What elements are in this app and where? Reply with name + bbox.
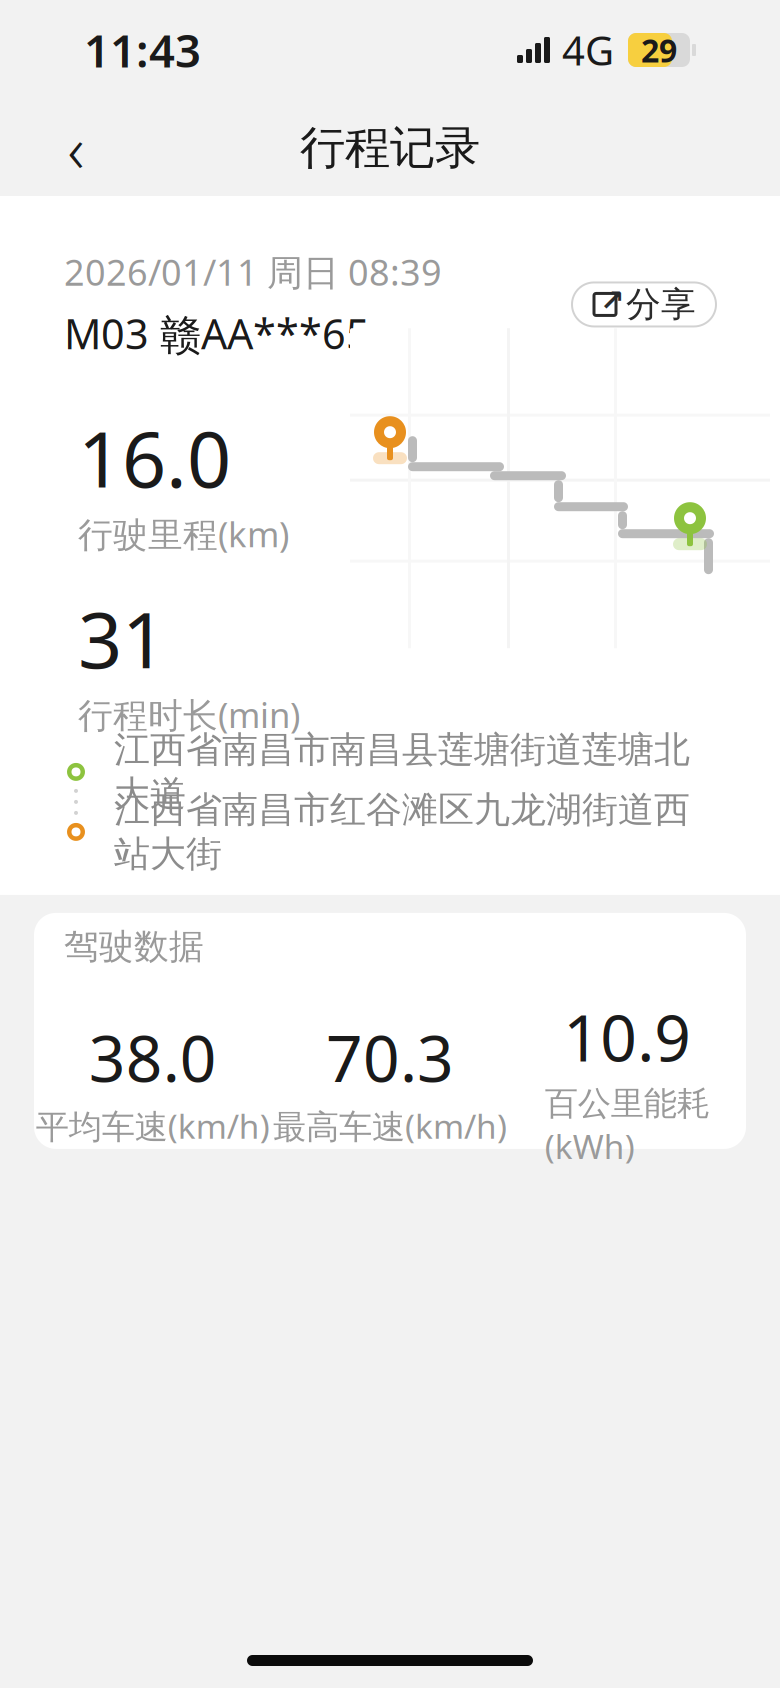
staticText: ↗ — [600, 284, 625, 317]
staticText: 29 — [641, 29, 677, 71]
staticText: 行程时长(min) — [78, 692, 300, 738]
staticText: 平均车速(km/h) — [36, 1104, 270, 1148]
staticText: 2026/01/11 周日 08:39 — [64, 248, 442, 296]
staticText: 38.0 — [89, 1015, 217, 1100]
staticText: 最高车速(km/h) — [273, 1104, 507, 1148]
staticText: 分享 — [626, 283, 696, 326]
staticText: 行驶里程(km) — [78, 511, 289, 557]
staticText: 行程记录 — [300, 120, 480, 176]
staticText: 江西省南昌市南昌县莲塘街道莲塘北大道 — [114, 728, 690, 816]
staticText: 驾驶数据 — [64, 925, 204, 968]
staticText: 70.3 — [326, 1015, 454, 1100]
staticText: ‹ — [67, 105, 84, 190]
staticText: 10.9 — [563, 994, 691, 1079]
staticText: 百公里能耗(kWh) — [545, 1083, 710, 1168]
staticText: 4G — [562, 23, 614, 76]
staticText: 11:43 — [84, 20, 201, 80]
staticText: 江西省南昌市红谷滩区九龙湖街道西站大街 — [114, 788, 690, 876]
staticText: 31 — [78, 587, 166, 690]
button[interactable]: ↗ — [572, 282, 716, 326]
button[interactable]: Back — [36, 108, 116, 188]
staticText: M03 赣AA***65 — [64, 306, 370, 361]
staticText: 16.0 — [78, 406, 231, 509]
